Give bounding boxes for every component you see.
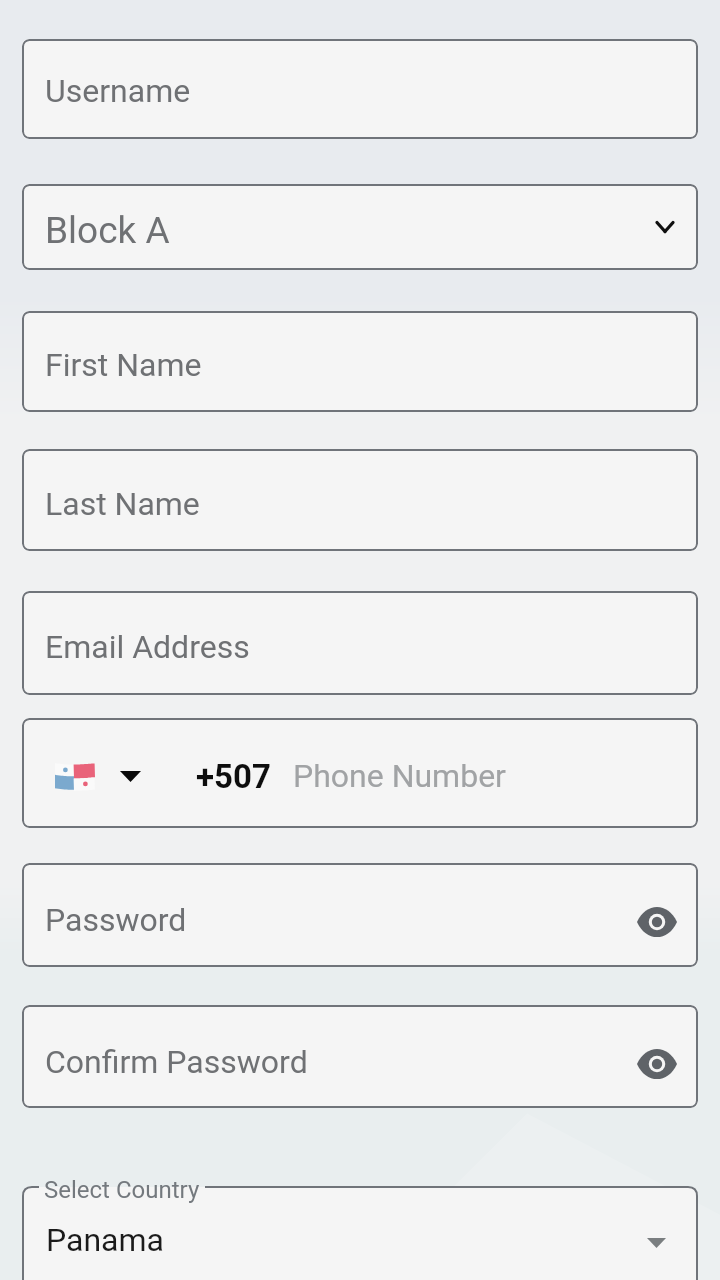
staticText: Block A [45, 209, 170, 252]
button[interactable]: Open block dropdown [641, 203, 689, 251]
button[interactable]: Confirm Password [22, 1005, 698, 1108]
staticText: Username [45, 72, 191, 110]
staticText: +507 [196, 757, 271, 796]
staticText: Confirm Password [45, 1043, 308, 1081]
staticText: Last Name [45, 485, 200, 523]
button[interactable]: Show password [631, 1038, 683, 1090]
button[interactable]: Select country code [22, 718, 698, 828]
button[interactable]: Email Address [22, 591, 698, 695]
button[interactable]: Select Country [22, 1176, 698, 1280]
button[interactable]: Select country code [109, 755, 151, 797]
button[interactable]: Password [22, 863, 698, 967]
button[interactable]: Show password [631, 896, 683, 948]
staticText: First Name [45, 346, 202, 384]
staticText: Select Country [44, 1176, 200, 1204]
staticText: Password [45, 901, 187, 939]
button[interactable]: Last Name [22, 449, 698, 551]
button[interactable]: Select country [630, 1217, 682, 1269]
button[interactable]: Username [22, 39, 698, 139]
staticText: Panama [46, 1221, 164, 1259]
button[interactable]: Block A [22, 184, 698, 270]
button[interactable]: First Name [22, 311, 698, 412]
staticText: Email Address [45, 628, 250, 666]
staticText: Phone Number [293, 757, 506, 795]
